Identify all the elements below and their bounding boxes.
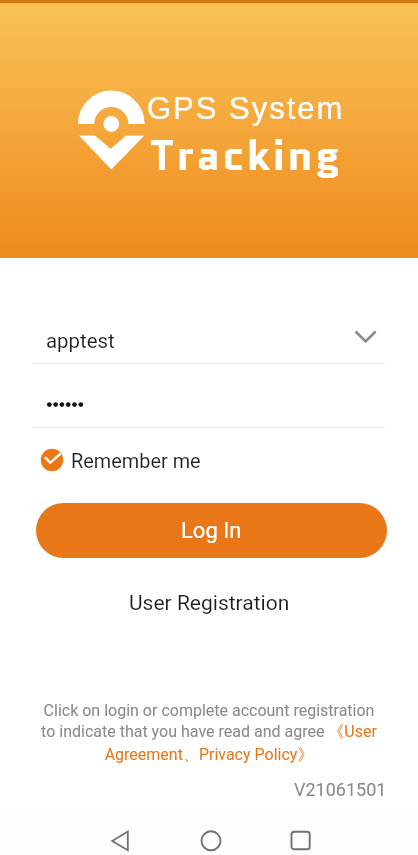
button[interactable]: Back — [75, 810, 165, 855]
staticText: Click on login or complete account regis… — [35, 701, 383, 765]
staticText: V21061501 — [294, 779, 387, 800]
button[interactable]: Home — [166, 810, 256, 855]
staticText: Remember me — [71, 450, 201, 473]
button[interactable]: apptest — [32, 318, 387, 362]
button[interactable] — [32, 382, 387, 426]
button[interactable]: Log In — [36, 503, 387, 558]
staticText: GPS System — [147, 91, 345, 126]
button[interactable]: Remember me — [38, 444, 208, 476]
staticText: Tracking — [150, 125, 343, 185]
staticText: apptest — [46, 329, 115, 353]
button[interactable]: User Registration — [115, 586, 304, 621]
other: Show saved accounts — [354, 329, 378, 345]
button[interactable]: Recent apps — [256, 810, 346, 855]
staticText: Log In — [181, 518, 242, 544]
staticText: User Registration — [129, 591, 290, 616]
